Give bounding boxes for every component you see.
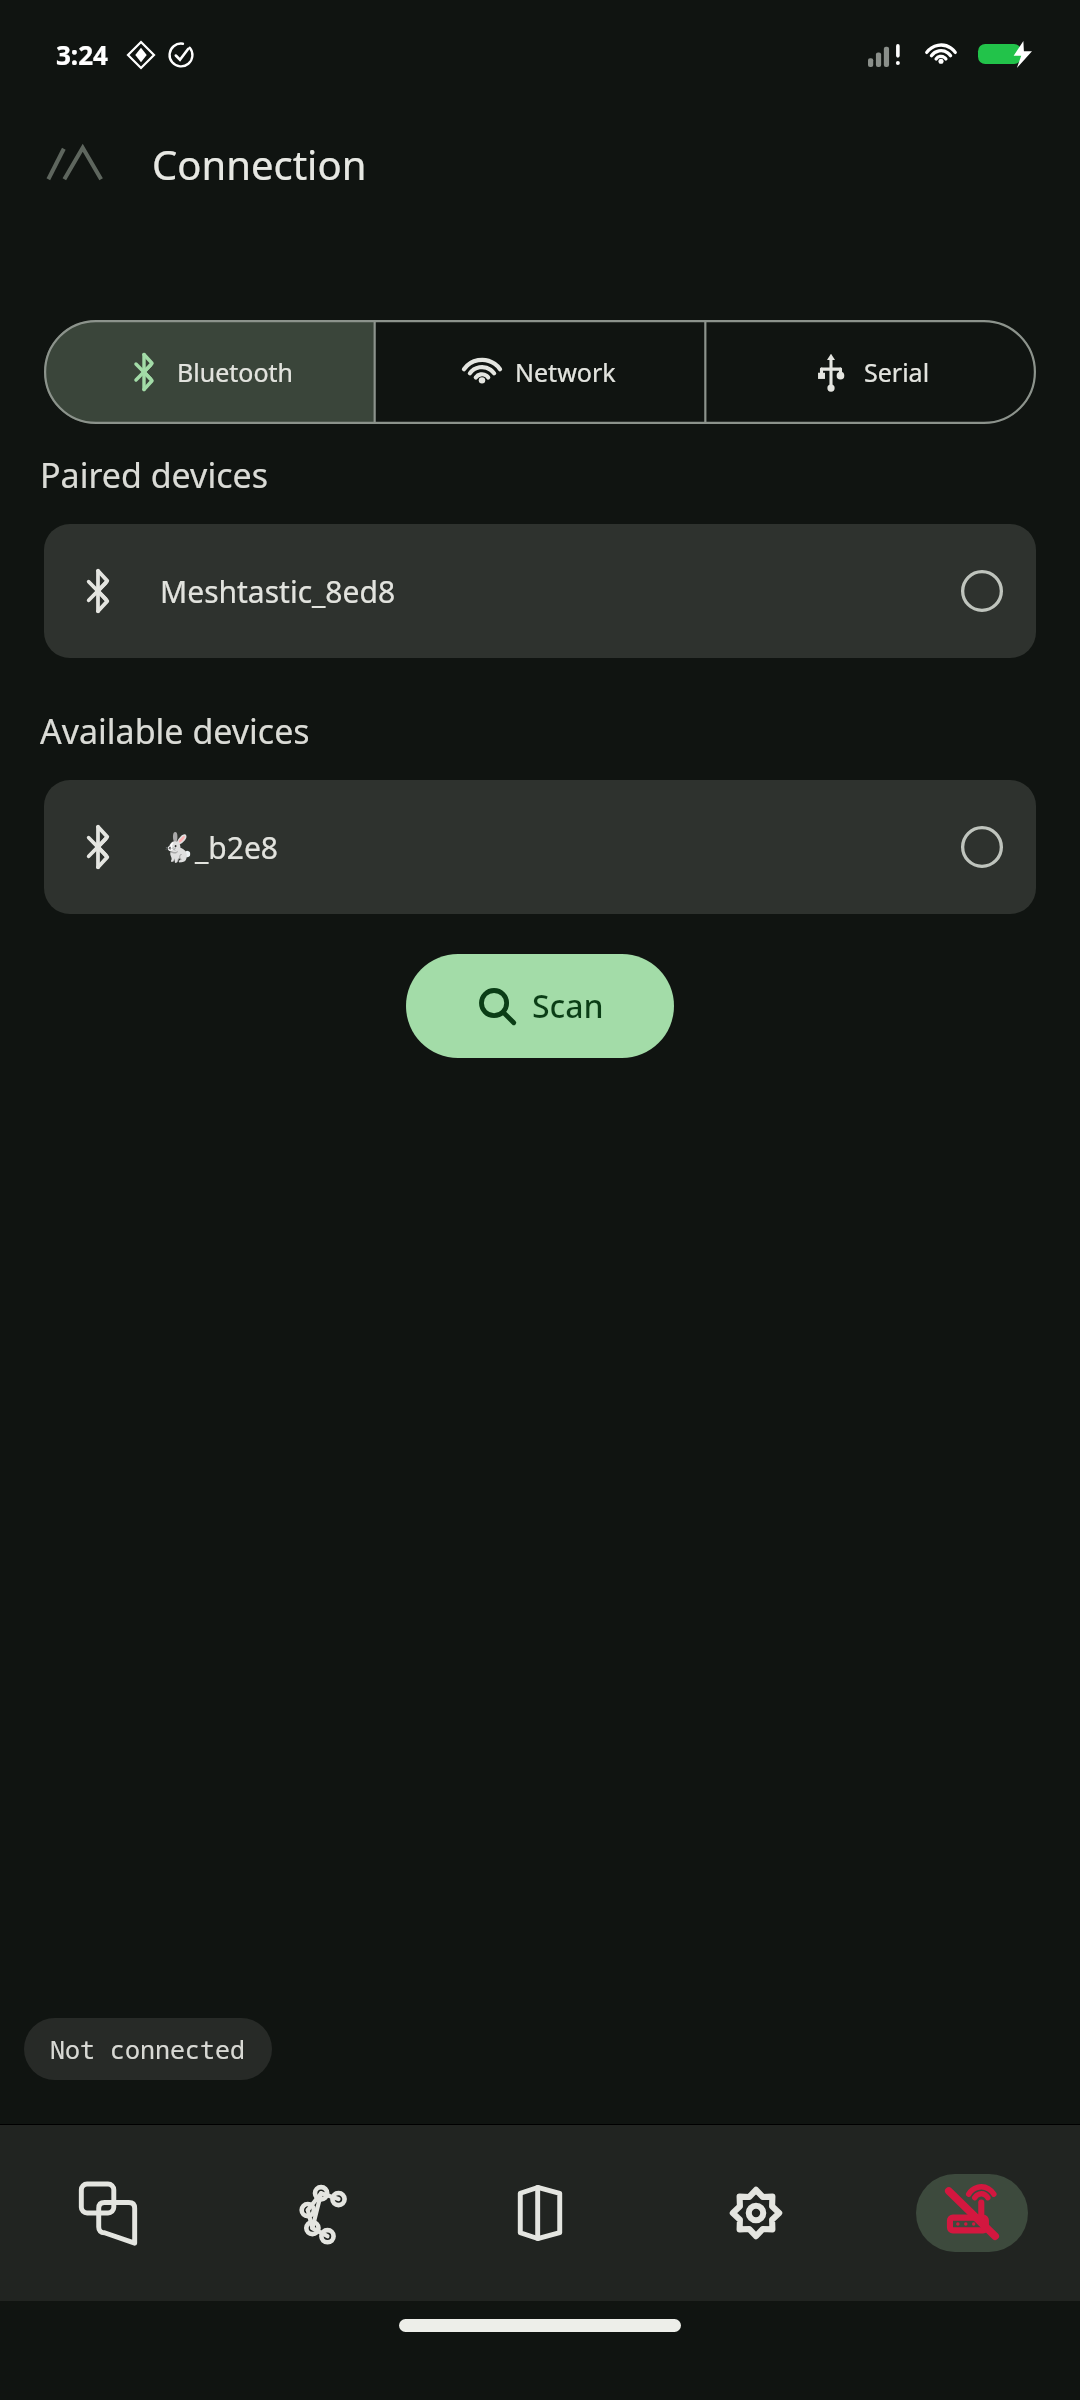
button[interactable]: 🐇 (44, 780, 1036, 914)
button[interactable]: Not connected (24, 2018, 272, 2080)
button[interactable]: Nodes (216, 2125, 432, 2301)
staticText: Available devices (40, 708, 310, 754)
button[interactable]: Messages (0, 2125, 216, 2301)
button[interactable]: Connection, not connected (864, 2125, 1080, 2301)
staticText: 🐇 (160, 831, 195, 864)
staticText: _b2e8 (195, 827, 279, 868)
button[interactable]: Bluetooth (44, 320, 374, 424)
button[interactable]: Network (374, 320, 705, 424)
staticText: Meshtastic_8ed8 (160, 571, 396, 612)
button[interactable]: Serial (705, 320, 1036, 424)
staticText: Scan (532, 984, 604, 1028)
button[interactable]: Settings (648, 2125, 864, 2301)
staticText: Bluetooth (177, 355, 294, 389)
button[interactable]: Scan (406, 954, 674, 1058)
button[interactable]: Meshtastic_8ed8 (44, 524, 1036, 658)
staticText: Paired devices (40, 452, 268, 498)
staticText: Not connected (50, 2032, 246, 2066)
staticText: Network (515, 355, 616, 389)
staticText: Serial (864, 355, 930, 389)
button[interactable]: Map (432, 2125, 648, 2301)
staticText: 3:24 (56, 37, 108, 72)
staticText: Connection (152, 137, 367, 191)
